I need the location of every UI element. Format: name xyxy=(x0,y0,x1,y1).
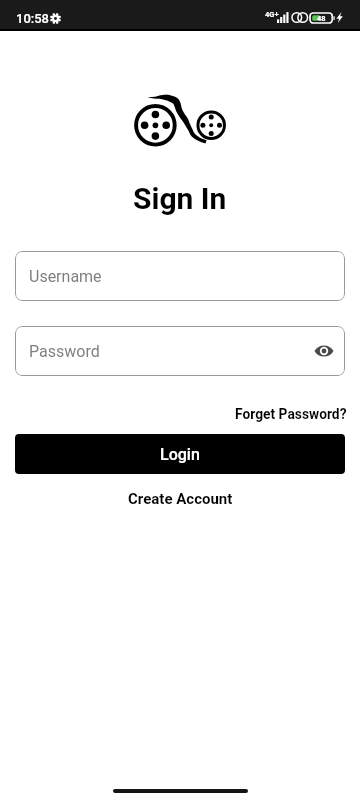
staticText: Username xyxy=(29,267,102,286)
staticText: Forget Password? xyxy=(235,406,347,422)
button[interactable]: Password xyxy=(15,326,345,376)
staticText: Sign In xyxy=(133,181,227,216)
button[interactable]: Forget Password? xyxy=(235,406,347,422)
staticText: 4G+ xyxy=(265,10,279,19)
staticText: Login xyxy=(160,445,200,464)
staticText: 10:58 xyxy=(16,11,50,26)
button[interactable]: Username xyxy=(15,251,345,301)
staticText: 48 xyxy=(317,14,326,23)
staticText: Create Account xyxy=(128,490,233,508)
button[interactable]: Show password xyxy=(312,339,336,363)
button[interactable]: Login xyxy=(15,434,345,474)
button[interactable]: Create Account xyxy=(128,490,233,508)
staticText: Password xyxy=(29,342,100,361)
